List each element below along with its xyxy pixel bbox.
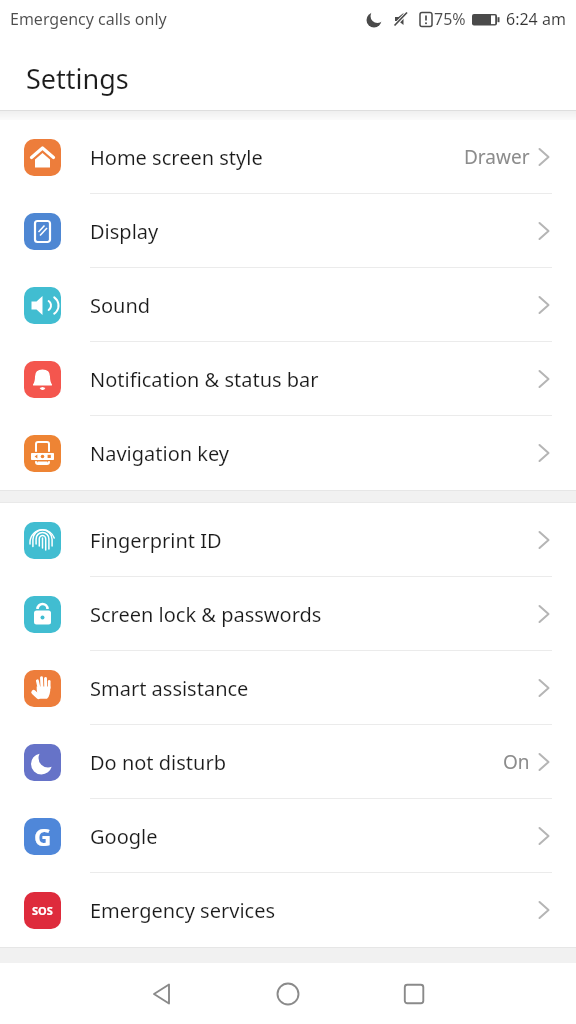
- button[interactable]: [351, 963, 477, 1024]
- staticText: Do not disturb: [90, 749, 226, 776]
- staticText: Google: [90, 823, 158, 850]
- button[interactable]: Fingerprint ID: [0, 503, 576, 577]
- button[interactable]: Do not disturb: [0, 725, 576, 799]
- button[interactable]: Smart assistance: [0, 651, 576, 725]
- button[interactable]: Navigation key: [0, 416, 576, 490]
- button[interactable]: [99, 963, 225, 1024]
- button[interactable]: [225, 963, 351, 1024]
- staticText: Notification & status bar: [90, 366, 319, 393]
- staticText: SOS: [32, 903, 53, 918]
- staticText: Smart assistance: [90, 675, 249, 702]
- button[interactable]: Screen lock & passwords: [0, 577, 576, 651]
- staticText: Sound: [90, 292, 151, 319]
- staticText: 75%: [434, 8, 466, 30]
- button[interactable]: Sound: [0, 268, 576, 342]
- button[interactable]: Home screen style: [0, 120, 576, 194]
- staticText: Home screen style: [90, 144, 263, 171]
- staticText: Navigation key: [90, 440, 230, 467]
- staticText: Drawer: [464, 144, 530, 170]
- staticText: On: [503, 749, 530, 775]
- staticText: Settings: [26, 60, 129, 97]
- button[interactable]: Display: [0, 194, 576, 268]
- staticText: Emergency calls only: [10, 8, 167, 30]
- staticText: Screen lock & passwords: [90, 601, 322, 628]
- staticText: Fingerprint ID: [90, 527, 222, 554]
- button[interactable]: SOS: [0, 873, 576, 947]
- staticText: 6:24 am: [506, 8, 566, 30]
- button[interactable]: Notification & status bar: [0, 342, 576, 416]
- staticText: G: [34, 820, 52, 853]
- staticText: Emergency services: [90, 897, 275, 924]
- button[interactable]: G: [0, 799, 576, 873]
- staticText: Display: [90, 218, 159, 245]
